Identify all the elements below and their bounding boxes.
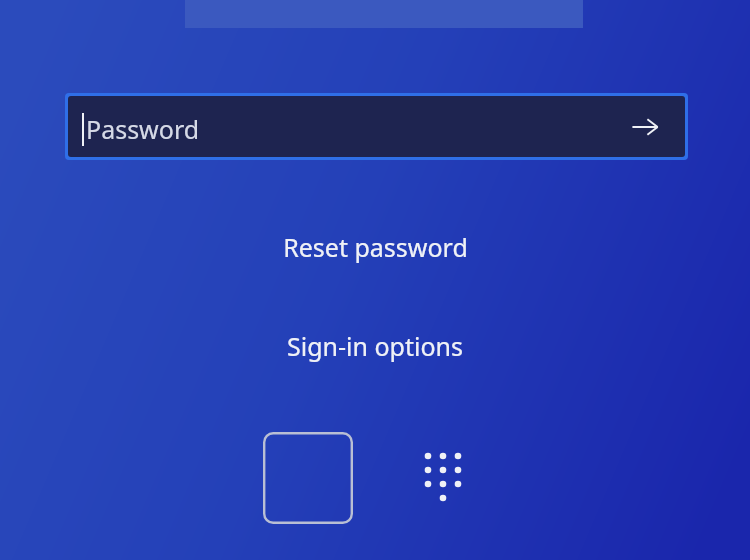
button[interactable]: Submit password	[623, 105, 667, 149]
staticText: Reset password	[283, 230, 468, 264]
staticText: Password	[86, 112, 200, 146]
button[interactable]: Smart card sign-in	[263, 432, 353, 524]
button[interactable]: Reset password	[0, 228, 750, 266]
button[interactable]: Sign-in options	[0, 327, 750, 365]
button[interactable]: PIN keypad sign-in	[414, 444, 472, 502]
button[interactable]: Password	[65, 93, 688, 160]
staticText: Sign-in options	[287, 329, 463, 363]
